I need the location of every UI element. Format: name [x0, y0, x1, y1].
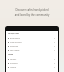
button[interactable]: Sey Coffee [6, 48, 58, 52]
staticText: Saved [8, 53, 13, 55]
staticText: Partners [10, 62, 18, 65]
button[interactable]: Variety [6, 57, 58, 61]
staticText: and loved by the community [0, 13, 64, 17]
staticText: Variety [10, 58, 17, 61]
button[interactable]: Cafe Grumpy [6, 40, 58, 44]
staticText: Cafe Grumpy [10, 41, 22, 44]
button[interactable]: Partners [6, 61, 58, 65]
staticText: Abraco [10, 66, 17, 69]
button[interactable]: Blue Bottle [6, 36, 58, 40]
staticText: Sey Coffee [10, 49, 20, 52]
button[interactable]: Abraco [6, 65, 58, 69]
button[interactable]: Devocion [6, 44, 58, 48]
staticText: Discover cafes hand-picked [0, 8, 64, 12]
staticText: Blue Bottle [10, 37, 20, 40]
staticText: Devocion [10, 45, 19, 48]
staticText: Nearby cafes [8, 32, 19, 34]
